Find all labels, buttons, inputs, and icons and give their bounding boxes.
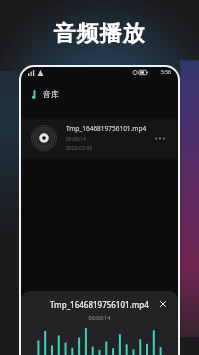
staticText: Tmp_1646819756101.mp4 bbox=[50, 299, 149, 310]
staticText: 音库 bbox=[43, 89, 59, 99]
staticText: 音频播放 bbox=[0, 20, 199, 48]
button[interactable]: Close bbox=[157, 298, 169, 310]
staticText: 2022-03-09 bbox=[66, 145, 93, 152]
button[interactable]: More options bbox=[151, 129, 169, 147]
staticText: Tmp_1646819756101.mp4 bbox=[66, 124, 147, 133]
staticText: 00:00:14 bbox=[66, 136, 86, 143]
staticText: 5:56 bbox=[161, 69, 171, 76]
button[interactable]: Tmp_1646819756101.mp4 bbox=[21, 118, 178, 158]
other: Library icon bbox=[32, 90, 37, 99]
staticText: 00:00:14 bbox=[21, 314, 178, 321]
